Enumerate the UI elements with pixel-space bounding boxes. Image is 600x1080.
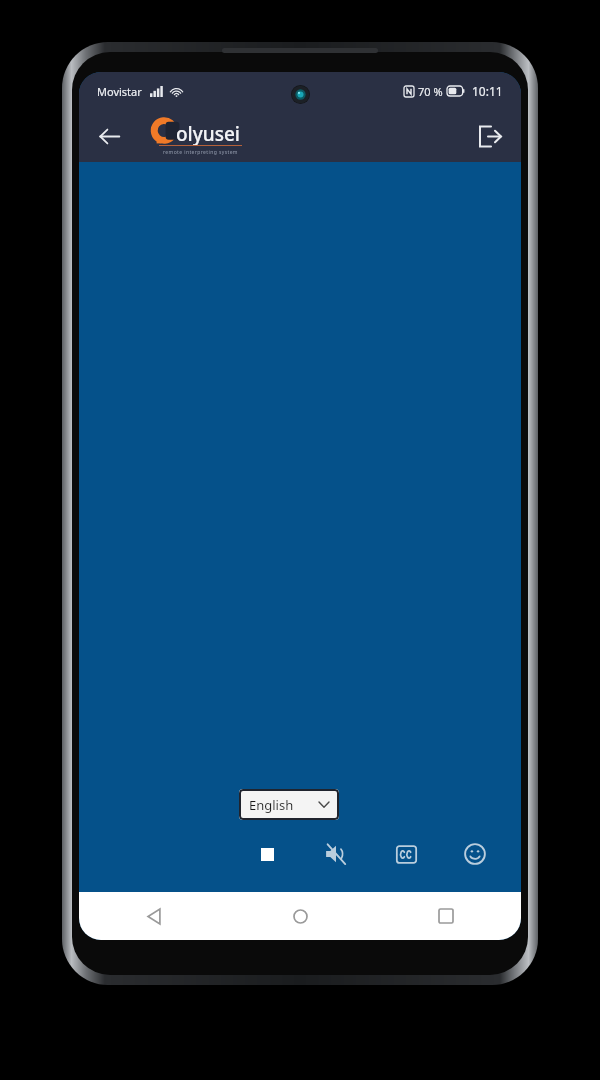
button[interactable]: Log out (467, 114, 511, 158)
staticText: olyusei (176, 121, 240, 147)
button[interactable]: Home (279, 895, 321, 937)
button[interactable]: Subtitles (388, 836, 424, 872)
button[interactable]: Back (87, 114, 131, 158)
staticText: remote interpreting system (163, 149, 238, 156)
button[interactable]: Reactions (457, 836, 493, 872)
button[interactable]: Unmute (318, 836, 354, 872)
staticText: 70 % (418, 84, 443, 99)
button[interactable]: Recent apps (425, 895, 467, 937)
staticText: English (249, 796, 294, 814)
button[interactable]: Back (133, 895, 175, 937)
staticText: 10:11 (472, 83, 503, 99)
staticText: Movistar (97, 84, 142, 99)
button[interactable]: English (239, 789, 339, 820)
button[interactable]: Stop (249, 836, 285, 872)
